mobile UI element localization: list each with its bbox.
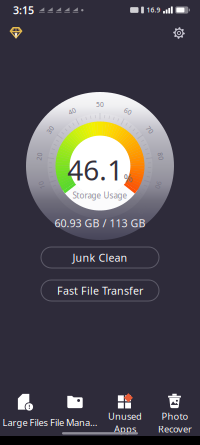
staticText: Fast File Transfer: [57, 283, 143, 298]
button[interactable]: Settings: [166, 21, 192, 45]
staticText: 46.1: [67, 151, 123, 188]
staticText: File Manager: [50, 416, 100, 429]
button[interactable]: Junk Clean: [41, 247, 159, 268]
staticText: 60.93 GB / 113 GB: [54, 216, 145, 230]
staticText: 30: [46, 125, 54, 134]
staticText: 100: [137, 205, 149, 214]
staticText: 70: [146, 125, 154, 134]
staticText: 80: [157, 152, 165, 161]
staticText: 16.9: [146, 6, 160, 14]
staticText: Junk Clean: [72, 250, 127, 265]
staticText: Large Files: [2, 416, 47, 429]
staticText: Storage Usage: [72, 190, 127, 201]
button[interactable]: Photo: [150, 388, 200, 436]
staticText: 60: [124, 107, 132, 116]
staticText: %: [124, 171, 133, 185]
staticText: Unused: [108, 410, 142, 422]
staticText: Apps: [114, 423, 136, 435]
staticText: 3:15: [13, 3, 34, 17]
button[interactable]: Unused: [100, 388, 150, 436]
staticText: 10: [37, 181, 45, 189]
staticText: Photo: [161, 410, 188, 422]
staticText: 40: [68, 107, 76, 116]
staticText: 50: [96, 100, 104, 109]
staticText: Recover: [158, 423, 192, 435]
staticText: 20: [35, 152, 43, 161]
button[interactable]: File Manager: [50, 388, 100, 436]
staticText: 90: [154, 181, 162, 189]
button[interactable]: Premium: [3, 21, 29, 45]
staticText: 0: [54, 205, 58, 214]
button[interactable]: Fast File Transfer: [41, 280, 159, 301]
button[interactable]: Large Files: [0, 388, 50, 436]
